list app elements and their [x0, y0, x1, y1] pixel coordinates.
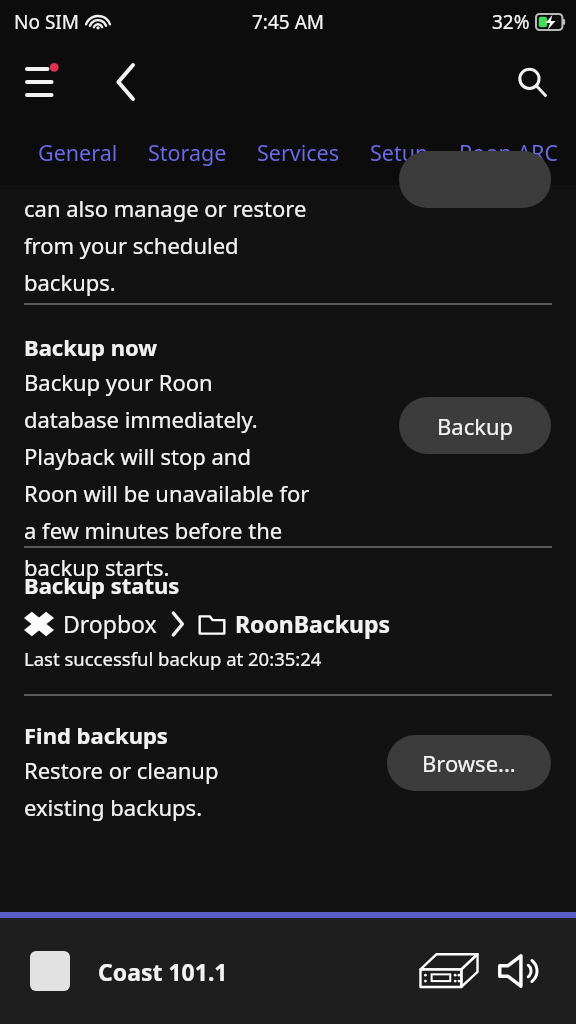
staticText: Find backups	[24, 720, 168, 750]
staticText: Backup	[437, 411, 514, 441]
staticText: Storage	[148, 138, 227, 167]
staticText: Backup your Roon	[24, 367, 213, 397]
staticText: existing backups.	[24, 792, 203, 822]
staticText: Roon ARC	[459, 138, 558, 167]
button[interactable]: Dropbox	[24, 608, 391, 639]
button[interactable]: Manage backups	[399, 151, 551, 208]
button[interactable]: Backup	[399, 397, 551, 454]
button[interactable]: Browse...	[387, 735, 551, 791]
staticText: a few minutes before the	[24, 515, 283, 545]
staticText: Dropbox	[63, 608, 157, 639]
staticText: Coast 101.1	[98, 956, 228, 987]
staticText: Services	[257, 138, 340, 167]
staticText: Roon will be unavailable for	[24, 478, 310, 508]
staticText: from your scheduled	[24, 230, 239, 260]
button[interactable]: Roon ARC	[459, 132, 558, 173]
staticText: backups.	[24, 267, 116, 297]
staticText: Setup	[370, 138, 429, 167]
staticText: can also manage or restore	[24, 193, 307, 223]
staticText: Browse...	[422, 748, 516, 778]
staticText: 7:45 AM	[252, 9, 325, 35]
staticText: Last successful backup at 20:35:24	[24, 646, 322, 671]
staticText: database immediately.	[24, 404, 258, 434]
staticText: General	[38, 138, 118, 167]
button[interactable]: Menu	[14, 54, 70, 110]
button[interactable]: Services	[257, 132, 340, 173]
button[interactable]: Storage	[148, 132, 227, 173]
staticText: RoonBackups	[235, 608, 391, 639]
button[interactable]: Back	[98, 54, 154, 110]
button[interactable]: Zone device	[418, 949, 480, 993]
button[interactable]: Search	[504, 54, 560, 110]
staticText: Backup now	[24, 332, 158, 362]
staticText: Restore or cleanup	[24, 755, 219, 785]
button[interactable]: Volume	[494, 949, 546, 993]
button[interactable]: Setup	[370, 132, 429, 173]
button[interactable]: General	[38, 132, 118, 173]
staticText: No SIM	[14, 9, 79, 35]
staticText: Backup status	[24, 570, 180, 600]
staticText: Playback will stop and	[24, 441, 251, 471]
staticText: backup starts.	[24, 552, 170, 582]
button[interactable]: Coast 101.1	[30, 918, 546, 1024]
staticText: 32%	[492, 9, 530, 35]
